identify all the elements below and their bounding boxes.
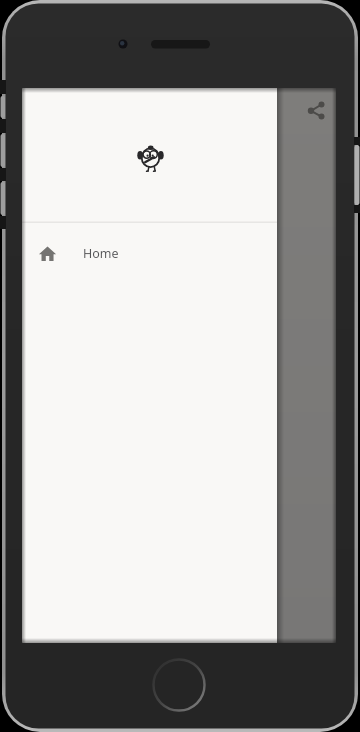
- staticText: Home: [83, 245, 119, 262]
- button[interactable]: Home: [22, 229, 277, 277]
- button[interactable]: [294, 95, 325, 126]
